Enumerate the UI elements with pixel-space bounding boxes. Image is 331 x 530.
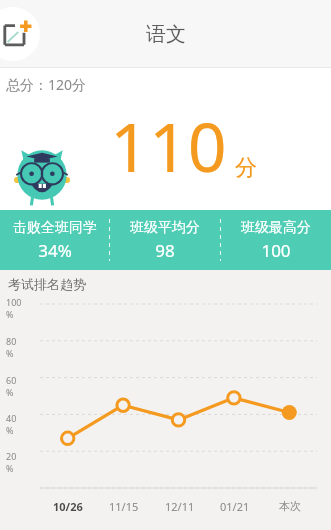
staticText: 34%	[38, 239, 72, 262]
button[interactable]: 班级最高分	[221, 210, 331, 270]
staticText: %	[6, 308, 14, 320]
button[interactable]: Add note	[0, 7, 40, 61]
staticText: 80	[6, 335, 17, 347]
staticText: 01/21	[220, 499, 250, 514]
staticText: 语文	[146, 22, 186, 47]
staticText: 班级平均分	[130, 219, 200, 237]
staticText: 20	[6, 450, 17, 462]
staticText: 11/15	[109, 499, 139, 514]
staticText: 98	[155, 239, 175, 262]
staticText: 班级最高分	[241, 219, 311, 237]
staticText: 100	[261, 239, 291, 262]
staticText: 击败全班同学	[13, 219, 97, 237]
button[interactable]: 击败全班同学	[0, 210, 109, 270]
staticText: 分	[235, 154, 257, 182]
staticText: %	[6, 386, 14, 398]
staticText: 110	[110, 99, 227, 192]
staticText: 本次	[279, 499, 301, 513]
staticText: %	[6, 347, 14, 359]
staticText: 100	[6, 296, 22, 308]
staticText: 60	[6, 374, 17, 386]
staticText: 10/26	[53, 499, 83, 514]
staticText: 考试排名趋势	[8, 276, 86, 292]
staticText: 总分：120分	[6, 75, 87, 94]
staticText: 40	[6, 412, 17, 424]
staticText: %	[6, 462, 14, 474]
staticText: 12/11	[165, 499, 195, 514]
staticText: %	[6, 424, 14, 436]
button[interactable]: 班级平均分	[110, 210, 220, 270]
